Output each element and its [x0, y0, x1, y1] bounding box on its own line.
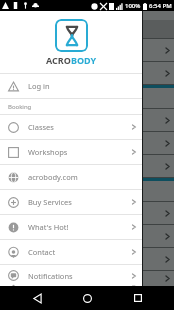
- button[interactable]: Home: [73, 286, 101, 310]
- staticText: Contact: [28, 247, 56, 257]
- button[interactable]: Workshops: [0, 140, 142, 164]
- staticText: Booking: [8, 103, 32, 111]
- staticText: What's Hot!: [28, 222, 69, 232]
- button[interactable]: Notifications: [0, 265, 142, 286]
- staticText: Log in: [28, 81, 50, 91]
- button[interactable]: acrobody.com: [0, 165, 142, 189]
- button[interactable]: Back: [23, 286, 51, 310]
- staticText: Notifications: [28, 271, 73, 281]
- staticText: 100%: [125, 2, 141, 10]
- staticText: Workshops: [28, 147, 68, 157]
- staticText: BODY: [71, 54, 97, 66]
- button[interactable]: Recents: [124, 286, 152, 310]
- button[interactable]: Buy Services: [0, 190, 142, 214]
- staticText: acrobody.com: [28, 172, 78, 182]
- staticText: 6:54 PM: [149, 2, 172, 10]
- button[interactable]: Contact: [0, 240, 142, 264]
- staticText: ACRO: [46, 54, 71, 66]
- staticText: Classes: [28, 122, 54, 132]
- staticText: Buy Services: [28, 197, 72, 207]
- button[interactable]: What's Hot!: [0, 215, 142, 239]
- button[interactable]: Classes: [0, 115, 142, 139]
- button[interactable]: Log in: [0, 74, 142, 98]
